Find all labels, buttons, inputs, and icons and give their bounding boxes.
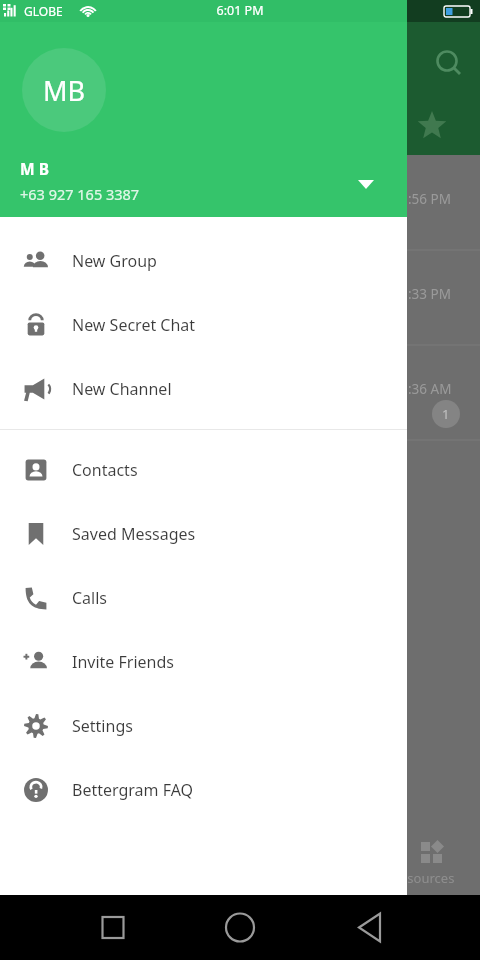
button[interactable]: Saved Messages (0, 502, 407, 566)
staticText: :36 AM (408, 380, 452, 398)
button[interactable]: Invite Friends (0, 630, 407, 694)
staticText: :33 PM (408, 285, 451, 303)
button[interactable]: New Group (0, 229, 407, 293)
staticText: 6:01 PM (0, 2, 480, 19)
button[interactable]: New Secret Chat (0, 293, 407, 357)
staticText: 1 (442, 405, 450, 423)
button[interactable]: Bettergram FAQ (0, 758, 407, 822)
staticText: New Channel (72, 378, 172, 400)
staticText: Contacts (72, 459, 138, 481)
button[interactable]: Calls (0, 566, 407, 630)
staticText: Bettergram FAQ (72, 779, 194, 801)
staticText: Invite Friends (72, 651, 174, 673)
staticText: Saved Messages (72, 523, 196, 545)
staticText: MB (43, 72, 86, 109)
staticText: GLOBE (24, 3, 63, 19)
staticText: New Group (72, 250, 157, 272)
staticText: Settings (72, 715, 133, 737)
button[interactable]: Contacts (0, 438, 407, 502)
staticText: Calls (72, 587, 108, 609)
button[interactable]: MB (0, 0, 407, 217)
button[interactable]: Expand accounts (348, 165, 384, 201)
staticText: M B (20, 158, 49, 179)
staticText: :56 PM (408, 190, 451, 208)
staticText: New Secret Chat (72, 314, 196, 336)
button[interactable]: Settings (0, 694, 407, 758)
button[interactable]: New Channel (0, 357, 407, 421)
staticText: esources (400, 869, 455, 887)
staticText: +63 927 165 3387 (20, 184, 140, 204)
